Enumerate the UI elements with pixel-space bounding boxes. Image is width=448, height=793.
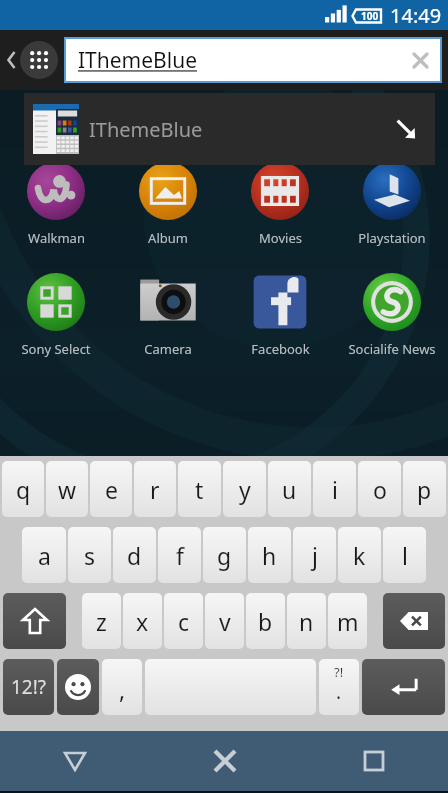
button[interactable]: d xyxy=(113,527,156,583)
staticText: ?! xyxy=(334,663,344,681)
button[interactable] xyxy=(145,659,316,715)
staticText: IThemeBlue xyxy=(89,116,203,143)
staticText: f xyxy=(176,540,184,571)
button[interactable]: Numbers and symbols xyxy=(3,659,54,715)
button[interactable]: Album xyxy=(112,158,224,247)
button[interactable]: g xyxy=(203,527,246,583)
staticText: w xyxy=(58,474,77,505)
staticText: . xyxy=(336,679,342,705)
button[interactable]: e xyxy=(90,461,132,517)
staticText: b xyxy=(258,606,273,637)
staticText: h xyxy=(262,540,277,571)
button[interactable]: a xyxy=(22,527,66,583)
button[interactable]: Socialife News xyxy=(336,269,448,358)
button[interactable]: Sony Select xyxy=(0,269,112,358)
staticText: Playstation xyxy=(358,229,426,247)
staticText: l xyxy=(402,540,408,571)
button[interactable]: t xyxy=(178,461,221,517)
button[interactable]: w xyxy=(46,461,88,517)
staticText: 12!? xyxy=(11,674,47,700)
button[interactable]: Emoji xyxy=(57,659,99,715)
staticText: v xyxy=(219,606,231,637)
button[interactable]: b xyxy=(246,593,285,649)
button[interactable]: Insert suggestion xyxy=(386,109,426,149)
button[interactable]: Walkman xyxy=(0,158,112,247)
button[interactable]: Movies xyxy=(224,158,336,247)
staticText: e xyxy=(105,474,118,505)
button[interactable]: Recent apps xyxy=(299,731,448,791)
staticText: IThemeBlue xyxy=(78,46,197,75)
button[interactable]: j xyxy=(293,527,336,583)
staticText: Sony Select xyxy=(21,340,91,358)
staticText: Album xyxy=(148,229,188,247)
staticText: q xyxy=(16,474,31,505)
staticText: Socialife News xyxy=(348,340,436,358)
staticText: t xyxy=(195,474,204,505)
staticText: n xyxy=(299,606,314,637)
staticText: Camera xyxy=(144,340,192,358)
button[interactable]: r xyxy=(134,461,176,517)
button[interactable]: ?! xyxy=(319,659,359,715)
button[interactable]: Camera xyxy=(112,269,224,358)
button[interactable]: o xyxy=(358,461,401,517)
staticText: Facebook xyxy=(251,340,310,358)
button[interactable]: IThemeBlue xyxy=(24,93,435,165)
button[interactable]: c xyxy=(164,593,203,649)
staticText: y xyxy=(239,474,251,505)
button[interactable]: Playstation xyxy=(336,158,448,247)
button[interactable]: z xyxy=(82,593,121,649)
staticText: p xyxy=(417,474,432,505)
staticText: Walkman xyxy=(28,229,85,247)
staticText: a xyxy=(38,540,51,571)
button[interactable]: x xyxy=(123,593,162,649)
staticText: 14:49 xyxy=(390,2,442,29)
staticText: , xyxy=(119,674,126,705)
staticText: s xyxy=(84,540,96,571)
button[interactable]: f xyxy=(158,527,201,583)
button[interactable]: p xyxy=(403,461,446,517)
button[interactable]: s xyxy=(68,527,111,583)
staticText: u xyxy=(282,474,297,505)
staticText: d xyxy=(127,540,142,571)
button[interactable]: u xyxy=(268,461,311,517)
staticText: Movies xyxy=(259,229,302,247)
staticText: r xyxy=(150,474,160,505)
button[interactable]: y xyxy=(223,461,266,517)
button[interactable]: q xyxy=(2,461,44,517)
button[interactable]: App drawer xyxy=(0,30,64,90)
button[interactable]: n xyxy=(287,593,326,649)
staticText: x xyxy=(136,606,149,637)
button[interactable]: Shift xyxy=(3,593,66,649)
button[interactable]: m xyxy=(328,593,367,649)
button[interactable]: k xyxy=(338,527,381,583)
staticText: o xyxy=(373,474,387,505)
staticText: i xyxy=(332,474,338,505)
button[interactable]: , xyxy=(102,659,142,715)
button[interactable]: Home xyxy=(150,731,299,791)
staticText: c xyxy=(178,606,190,637)
staticText: j xyxy=(312,540,318,571)
button[interactable]: Hide keyboard xyxy=(0,731,150,791)
button[interactable]: Delete xyxy=(383,593,445,649)
staticText: k xyxy=(353,540,366,571)
button[interactable]: v xyxy=(205,593,244,649)
staticText: Chrome xyxy=(32,98,81,116)
staticText: z xyxy=(96,606,107,637)
staticText: m xyxy=(337,606,359,637)
staticText: 100 xyxy=(361,9,379,23)
button[interactable]: i xyxy=(313,461,356,517)
button[interactable]: Enter xyxy=(362,659,445,715)
staticText: g xyxy=(217,540,232,571)
button[interactable]: l xyxy=(383,527,426,583)
button[interactable]: Clear text xyxy=(400,40,440,80)
button[interactable]: Facebook xyxy=(224,269,336,358)
button[interactable]: h xyxy=(248,527,291,583)
button[interactable]: IThemeBlue xyxy=(66,39,440,81)
